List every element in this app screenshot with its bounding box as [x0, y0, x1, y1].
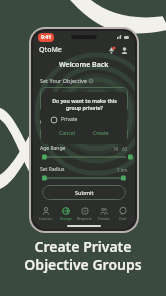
staticText: Create Private Objective Groups: [24, 237, 142, 274]
button[interactable]: Create: [87, 128, 115, 139]
button[interactable]: Profile: [119, 45, 129, 55]
button[interactable]: Going out for a drink 🍻: [40, 87, 128, 113]
button[interactable]: Other: [101, 128, 128, 140]
staticText: Set Radius: [40, 166, 65, 173]
staticText: 9:41: [41, 34, 51, 41]
staticText: Gender: [40, 119, 58, 126]
staticText: Cancel: [59, 130, 75, 137]
staticText: Connect: [39, 216, 53, 221]
staticText: 5 km: [117, 167, 128, 173]
button[interactable]: Chat: [113, 206, 132, 222]
staticText: QtoMe: [39, 45, 62, 55]
button[interactable]: Male: [40, 128, 66, 140]
staticText: Create: [93, 130, 109, 137]
button[interactable]: Friends: [94, 206, 113, 222]
button[interactable]: Private: [47, 116, 121, 123]
staticText: Going out for a drink 🍻: [45, 91, 100, 98]
button[interactable]: Connect: [36, 206, 56, 222]
staticText: Submit: [75, 189, 94, 196]
staticText: Groups: [60, 216, 72, 221]
button[interactable]: Submit: [42, 185, 126, 200]
button[interactable]: Female: [70, 128, 97, 140]
staticText: Friends: [98, 216, 110, 221]
staticText: Requests: [77, 216, 92, 221]
staticText: 18 - 60: [113, 146, 128, 152]
staticText: Do you want to make this group private?: [52, 97, 117, 111]
button[interactable]: Groups: [56, 206, 75, 222]
button[interactable]: Notifications: [106, 45, 116, 55]
button[interactable]: Requests: [75, 206, 94, 222]
staticText: Chat: [119, 216, 127, 221]
staticText: Set Your Objective: [40, 77, 87, 84]
button[interactable]: Cancel: [53, 128, 81, 139]
staticText: Private: [61, 116, 78, 123]
staticText: Welcome Back: [59, 60, 109, 70]
staticText: Age Range: [40, 145, 66, 152]
